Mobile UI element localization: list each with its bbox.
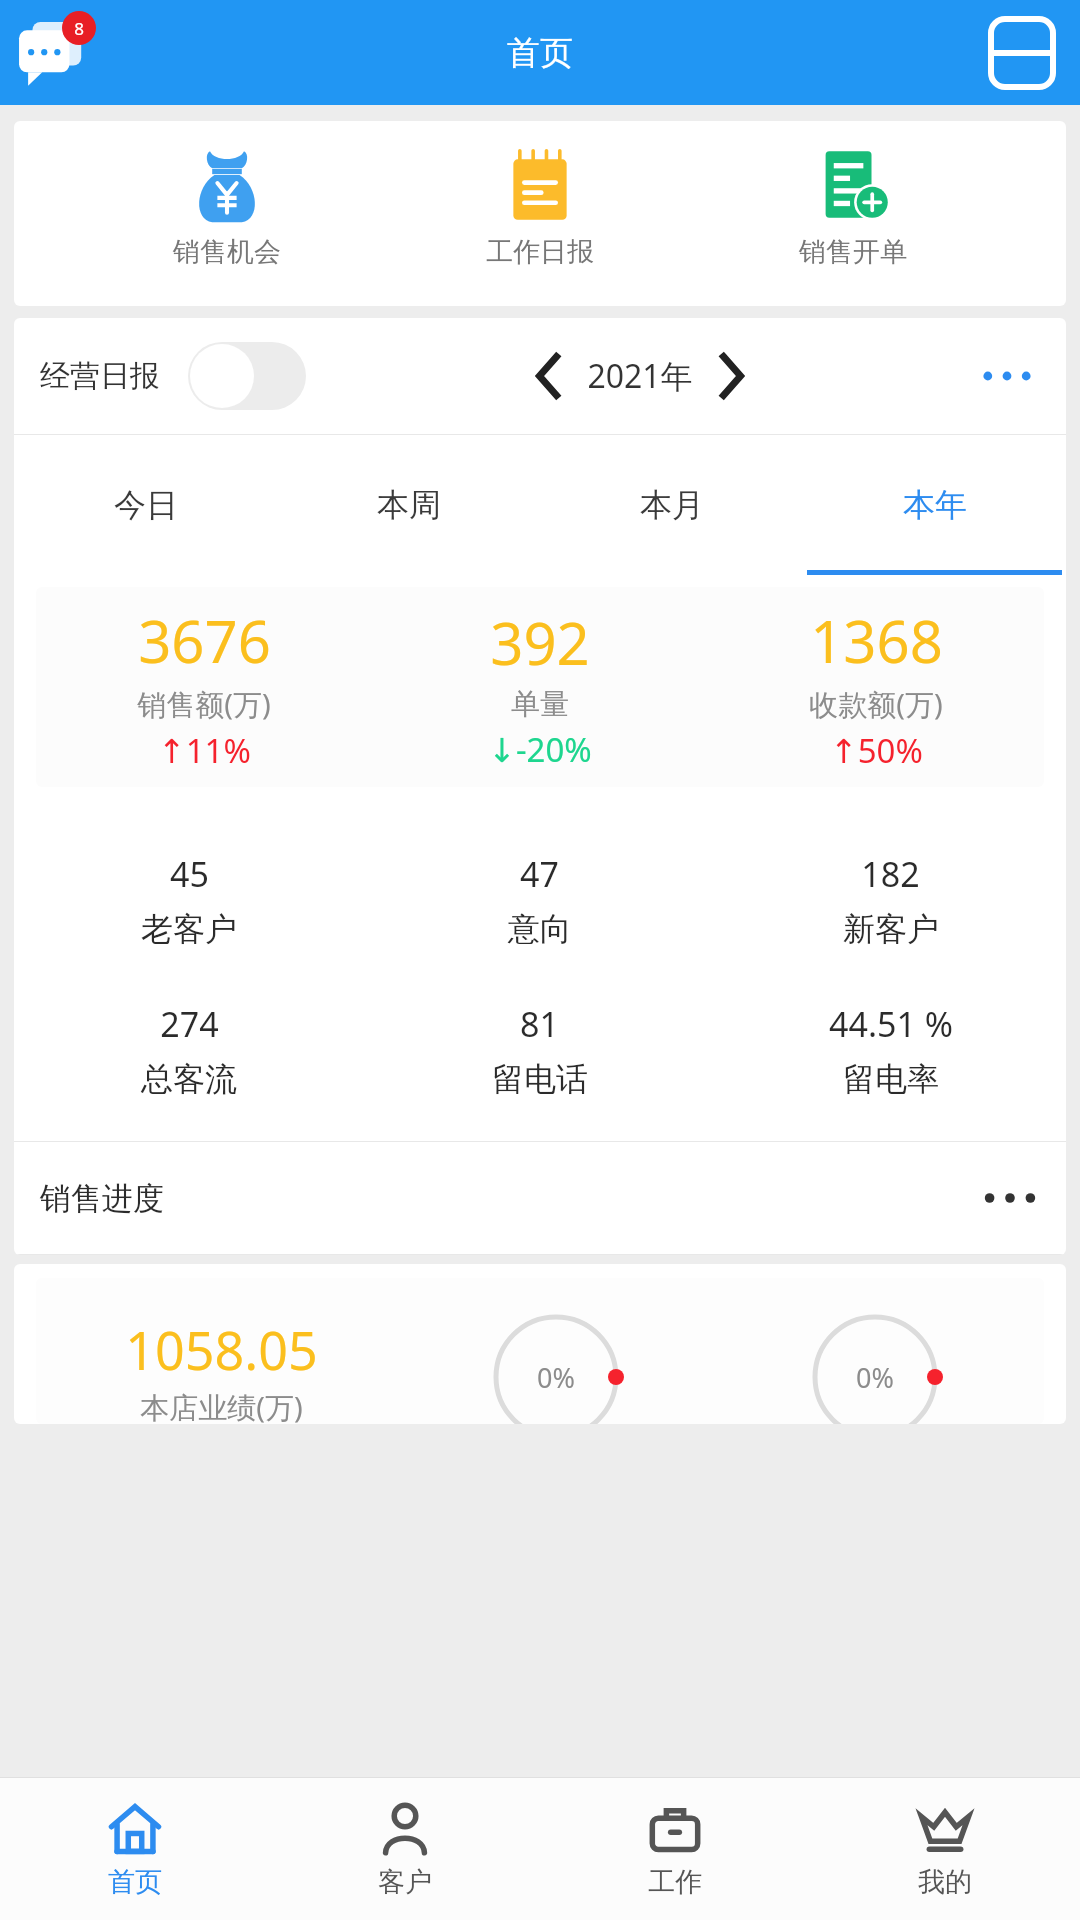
staticText: 44.51 % xyxy=(829,1001,953,1047)
button[interactable]: 44.51 % xyxy=(715,1001,1066,1099)
button[interactable]: 274 xyxy=(14,1001,364,1099)
button[interactable]: 工作日报 xyxy=(440,143,640,273)
button[interactable]: 1058.05 xyxy=(36,1278,1044,1424)
staticText: 销售开单 xyxy=(799,235,907,269)
staticText: 今日 xyxy=(114,485,178,525)
staticText: 3676 xyxy=(138,601,271,680)
staticText: 留电话 xyxy=(492,1059,588,1099)
staticText: 客户 xyxy=(378,1865,432,1899)
button[interactable]: 销售进度 xyxy=(40,1142,1040,1254)
staticText: 收款额(万) xyxy=(809,684,943,724)
staticText: 工作日报 xyxy=(486,235,594,269)
button[interactable]: 工作 xyxy=(540,1778,810,1920)
button[interactable]: 3676 xyxy=(36,601,372,773)
staticText: 8 xyxy=(74,17,84,40)
staticText: 留电率 xyxy=(843,1059,939,1099)
staticText: 45 xyxy=(170,851,209,897)
staticText: 新客户 xyxy=(843,909,939,949)
staticText: 本周 xyxy=(377,485,441,525)
button[interactable]: 销售开单 xyxy=(753,143,953,273)
button[interactable]: 首页 xyxy=(0,1778,270,1920)
staticText: 销售进度 xyxy=(40,1179,164,1218)
staticText: 47 xyxy=(520,851,559,897)
button[interactable]: More options xyxy=(974,348,1040,404)
staticText: 本月 xyxy=(640,485,704,525)
button[interactable]: 本周 xyxy=(277,435,540,575)
staticText: 1368 xyxy=(810,601,943,680)
staticText: 2021年 xyxy=(587,354,693,398)
button[interactable]: 1368 xyxy=(708,601,1044,773)
button[interactable]: Previous year xyxy=(521,348,577,404)
staticText: 本年 xyxy=(903,485,967,525)
staticText: 274 xyxy=(160,1001,219,1047)
staticText: 我的 xyxy=(918,1865,972,1899)
staticText: 意向 xyxy=(508,909,572,949)
staticText: 0% xyxy=(537,1359,575,1396)
staticText: 81 xyxy=(520,1001,559,1047)
staticText: ↑50% xyxy=(830,728,923,773)
staticText: 首页 xyxy=(507,32,573,74)
staticText: 首页 xyxy=(108,1865,162,1899)
button[interactable]: Toggle daily report xyxy=(188,342,306,410)
button[interactable]: Next year xyxy=(703,348,759,404)
staticText: 本店业绩(万) xyxy=(140,1387,303,1424)
button[interactable]: 47 xyxy=(364,851,715,949)
button[interactable]: 392 xyxy=(372,603,708,772)
button[interactable]: 今日 xyxy=(14,435,277,575)
button[interactable]: Split screen xyxy=(988,16,1056,90)
staticText: 销售机会 xyxy=(173,235,281,269)
button[interactable]: 客户 xyxy=(270,1778,540,1920)
button[interactable]: 销售机会 xyxy=(127,143,327,273)
button[interactable]: 本年 xyxy=(803,435,1066,575)
staticText: 老客户 xyxy=(141,909,237,949)
button[interactable]: Messages xyxy=(14,11,98,95)
staticText: ↓-20% xyxy=(488,727,592,772)
button[interactable]: 182 xyxy=(715,851,1066,949)
button[interactable]: 我的 xyxy=(810,1778,1080,1920)
button[interactable]: 本月 xyxy=(540,435,803,575)
staticText: 经营日报 xyxy=(40,357,160,395)
staticText: 392 xyxy=(490,603,590,682)
staticText: 182 xyxy=(861,851,920,897)
staticText: 工作 xyxy=(648,1865,702,1899)
button[interactable]: 45 xyxy=(14,851,364,949)
staticText: 1058.05 xyxy=(125,1314,318,1385)
button[interactable]: 81 xyxy=(364,1001,715,1099)
staticText: 总客流 xyxy=(141,1059,237,1099)
staticText: 单量 xyxy=(511,686,569,723)
staticText: 销售额(万) xyxy=(137,684,271,724)
staticText: ↑11% xyxy=(158,728,251,773)
staticText: 0% xyxy=(856,1359,894,1396)
